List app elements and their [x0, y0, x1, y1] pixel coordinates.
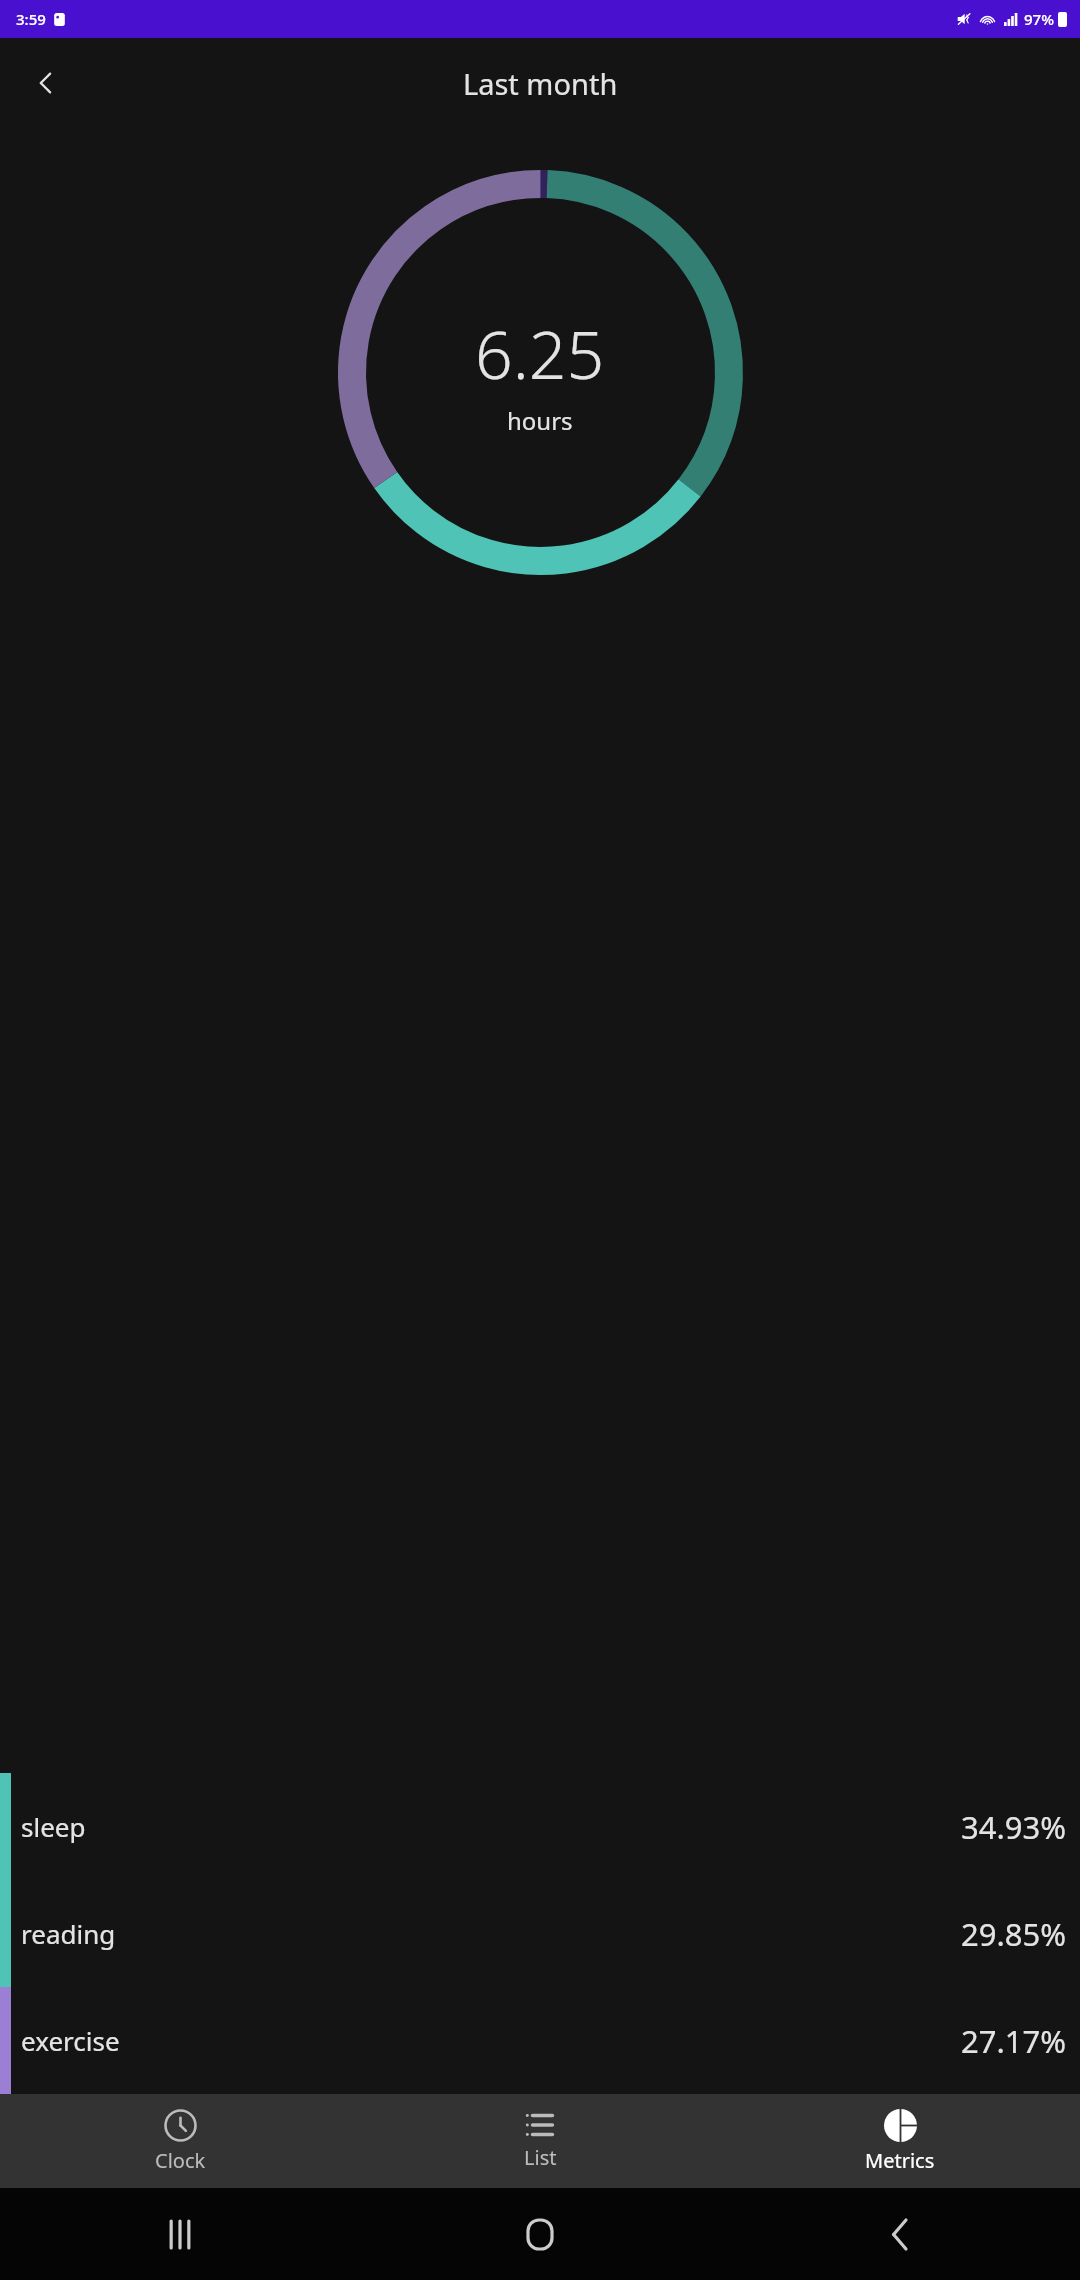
- staticText: reading: [21, 1916, 116, 1951]
- staticText: List: [524, 2144, 557, 2171]
- button[interactable]: Metrics: [720, 2094, 1080, 2188]
- button[interactable]: reading: [0, 1880, 1080, 1987]
- staticText: 6.25: [475, 308, 605, 398]
- staticText: 97%: [1024, 9, 1054, 29]
- staticText: 29.85%: [961, 1913, 1066, 1955]
- staticText: Clock: [155, 2147, 206, 2174]
- staticText: hours: [507, 404, 573, 437]
- button[interactable]: Back: [18, 55, 74, 111]
- button[interactable]: Recent apps: [0, 2188, 360, 2280]
- button[interactable]: exercise: [0, 1987, 1080, 2094]
- staticText: Last month: [463, 64, 618, 103]
- staticText: sleep: [21, 1809, 86, 1844]
- button[interactable]: sleep: [0, 1773, 1080, 1880]
- button[interactable]: List: [360, 2094, 720, 2188]
- staticText: 34.93%: [961, 1806, 1066, 1848]
- staticText: Metrics: [865, 2147, 935, 2174]
- staticText: exercise: [21, 2023, 120, 2058]
- staticText: 3:59: [16, 9, 46, 29]
- button[interactable]: Home: [360, 2188, 720, 2280]
- staticText: 27.17%: [961, 2020, 1066, 2062]
- button[interactable]: Back: [720, 2188, 1080, 2280]
- button[interactable]: Clock: [0, 2094, 360, 2188]
